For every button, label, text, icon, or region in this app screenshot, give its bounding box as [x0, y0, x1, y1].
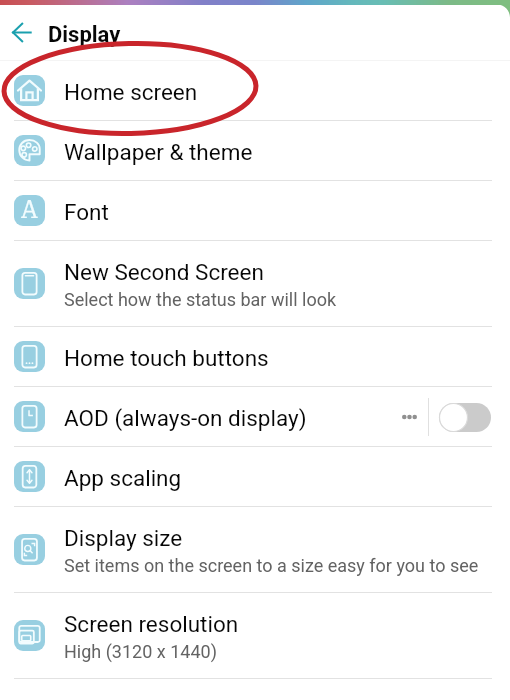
staticText: Display size: [64, 525, 183, 551]
button[interactable]: Home screen: [0, 61, 510, 120]
staticText: AOD (always-on display): [64, 405, 307, 431]
staticText: A: [21, 196, 38, 224]
staticText: App scaling: [64, 465, 182, 491]
staticText: High (3120 x 1440): [64, 641, 217, 662]
button[interactable]: AOD (always-on display): [0, 387, 510, 446]
staticText: Home touch buttons: [64, 345, 269, 371]
button[interactable]: Always-on display toggle: [439, 403, 491, 432]
button[interactable]: Wallpaper & theme: [0, 121, 510, 180]
staticText: Display: [48, 22, 121, 48]
button[interactable]: Back: [4, 14, 41, 51]
button[interactable]: New Second Screen: [0, 241, 510, 326]
staticText: Wallpaper & theme: [64, 139, 253, 165]
button[interactable]: App scaling: [0, 447, 510, 506]
staticText: New Second Screen: [64, 259, 264, 285]
button[interactable]: Screen resolution: [0, 593, 510, 678]
button[interactable]: A: [0, 181, 510, 240]
staticText: Screen resolution: [64, 611, 239, 637]
button[interactable]: Display size: [0, 507, 510, 592]
button[interactable]: Home touch buttons: [0, 327, 510, 386]
staticText: Font: [64, 199, 109, 225]
button[interactable]: More options: [384, 395, 428, 439]
staticText: Select how the status bar will look: [64, 289, 337, 310]
staticText: Home screen: [64, 79, 198, 105]
staticText: Set items on the screen to a size easy f…: [64, 555, 479, 576]
